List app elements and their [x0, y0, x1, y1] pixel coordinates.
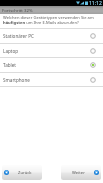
staticText: Welchen dieser Gerätetypen verwenden Sie…: [3, 15, 100, 25]
button[interactable]: Smartphone: [0, 72, 103, 86]
staticText: Weiter: [72, 170, 85, 176]
button[interactable]: Zurück: [2, 165, 42, 180]
button[interactable]: Tablet: [0, 57, 103, 71]
staticText: Laptop: [3, 48, 19, 54]
staticText: Fortschritt 32%: [2, 7, 33, 13]
other: Weiter: [94, 170, 99, 175]
staticText: 11:12: [89, 0, 102, 6]
other: Zurück: [4, 170, 9, 175]
staticText: Stationärer PC: [3, 33, 34, 39]
button[interactable]: Weiter: [61, 165, 101, 180]
staticText: Tablet: [3, 62, 17, 68]
button[interactable]: Stationärer PC: [0, 28, 103, 42]
button[interactable]: Laptop: [0, 43, 103, 57]
staticText: Zurück: [18, 170, 32, 176]
staticText: Smartphone: [3, 77, 30, 83]
